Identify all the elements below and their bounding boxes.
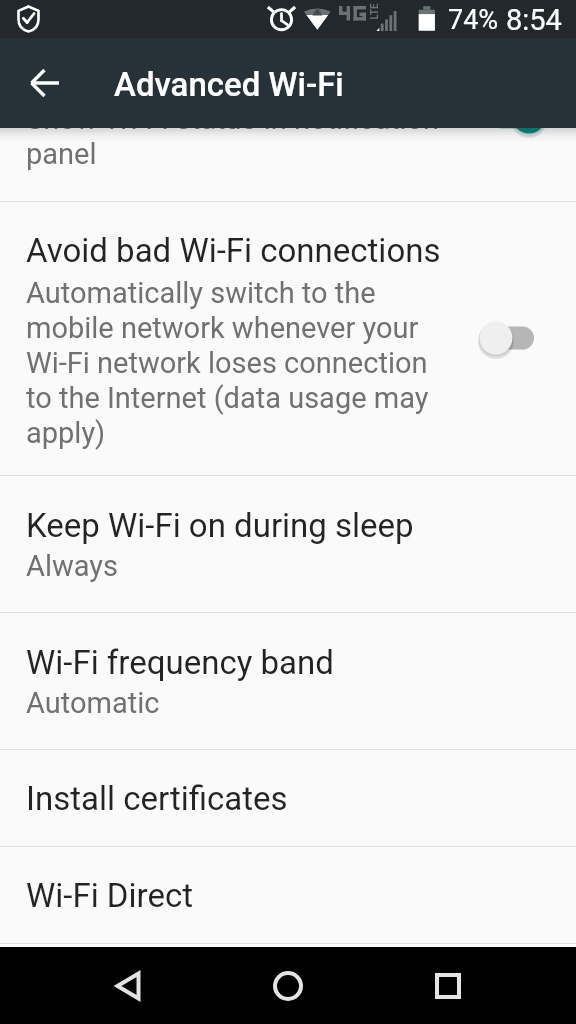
staticText: Wi-Fi Direct — [26, 876, 193, 915]
button[interactable]: Avoid bad Wi-Fi connections — [0, 202, 576, 475]
button[interactable]: Back — [88, 947, 168, 1024]
button[interactable]: Install certificates — [0, 750, 576, 846]
button[interactable]: Home — [248, 947, 328, 1024]
staticText: LTE — [368, 2, 380, 19]
staticText: Install certificates — [26, 779, 288, 818]
button[interactable]: Recent apps — [408, 947, 488, 1024]
button[interactable]: Keep Wi-Fi on during sleep — [0, 476, 576, 612]
button[interactable]: Wi-Fi Direct — [0, 847, 576, 943]
staticText: Keep Wi-Fi on during sleep — [26, 506, 414, 545]
button[interactable]: Wi-Fi frequency band — [0, 613, 576, 749]
staticText: Advanced Wi-Fi — [114, 65, 344, 104]
staticText: Wi-Fi frequency band — [26, 643, 334, 682]
staticText: Automatically switch to the mobile netwo… — [26, 276, 444, 450]
staticText: Always — [26, 549, 119, 583]
button[interactable]: Show Wi-Fi status in notification panel — [0, 128, 576, 201]
staticText: 8:54 — [506, 3, 562, 37]
staticText: Avoid bad Wi-Fi connections — [26, 231, 441, 270]
button[interactable]: Navigate up — [13, 51, 77, 115]
staticText: 74% — [448, 4, 499, 36]
staticText: Show Wi-Fi status in notification panel — [26, 128, 500, 171]
button[interactable]: Avoid bad Wi-Fi connections toggle — [462, 308, 562, 368]
staticText: Automatic — [26, 686, 160, 720]
